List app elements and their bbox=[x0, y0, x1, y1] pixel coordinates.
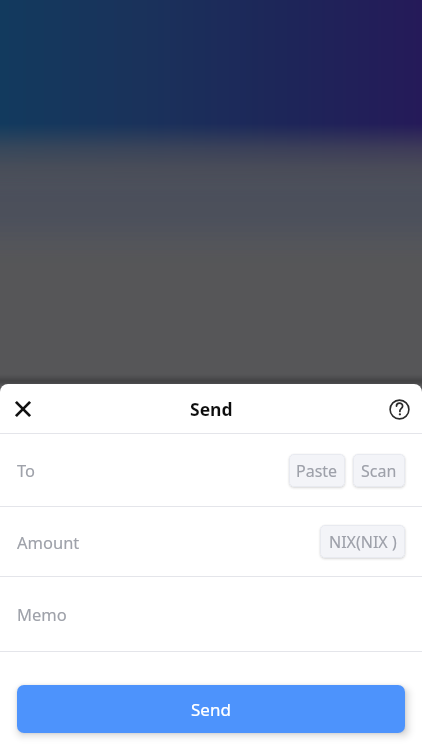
staticText: To bbox=[17, 459, 36, 481]
staticText: NIX(NIX ) bbox=[329, 531, 397, 553]
button[interactable]: Paste bbox=[289, 454, 345, 487]
staticText: Amount bbox=[17, 531, 80, 553]
button[interactable]: To bbox=[0, 434, 422, 506]
button[interactable]: Send bbox=[17, 685, 405, 733]
staticText: Memo bbox=[17, 603, 67, 625]
staticText: Scan bbox=[361, 460, 397, 482]
staticText: Send bbox=[190, 397, 233, 421]
button[interactable]: Help bbox=[383, 393, 415, 425]
staticText: Send bbox=[191, 698, 231, 721]
button[interactable]: Close bbox=[7, 393, 39, 425]
button[interactable]: NIX(NIX ) bbox=[320, 525, 405, 558]
staticText: Paste bbox=[296, 460, 338, 482]
button[interactable]: Memo bbox=[0, 577, 422, 651]
button[interactable]: Scan bbox=[353, 454, 405, 487]
button[interactable]: Amount bbox=[0, 507, 422, 576]
